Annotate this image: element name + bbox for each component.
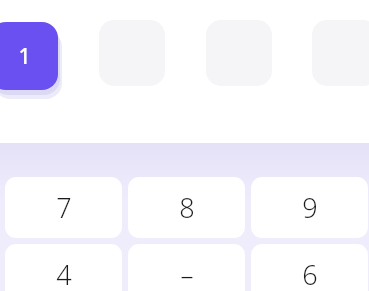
button[interactable]: –	[128, 244, 245, 291]
staticText: 8	[179, 189, 195, 226]
staticText: 1	[18, 42, 31, 71]
button[interactable]: 8	[128, 177, 245, 238]
staticText: 6	[302, 256, 318, 291]
button[interactable]: 9	[251, 177, 368, 238]
staticText: 9	[302, 189, 318, 226]
button[interactable]: 6	[251, 244, 368, 291]
staticText: 7	[56, 189, 72, 226]
button[interactable]: 1	[0, 22, 58, 90]
button[interactable]: 7	[5, 177, 122, 238]
button[interactable]: 4	[5, 244, 122, 291]
staticText: 4	[56, 256, 72, 291]
staticText: –	[180, 257, 194, 291]
